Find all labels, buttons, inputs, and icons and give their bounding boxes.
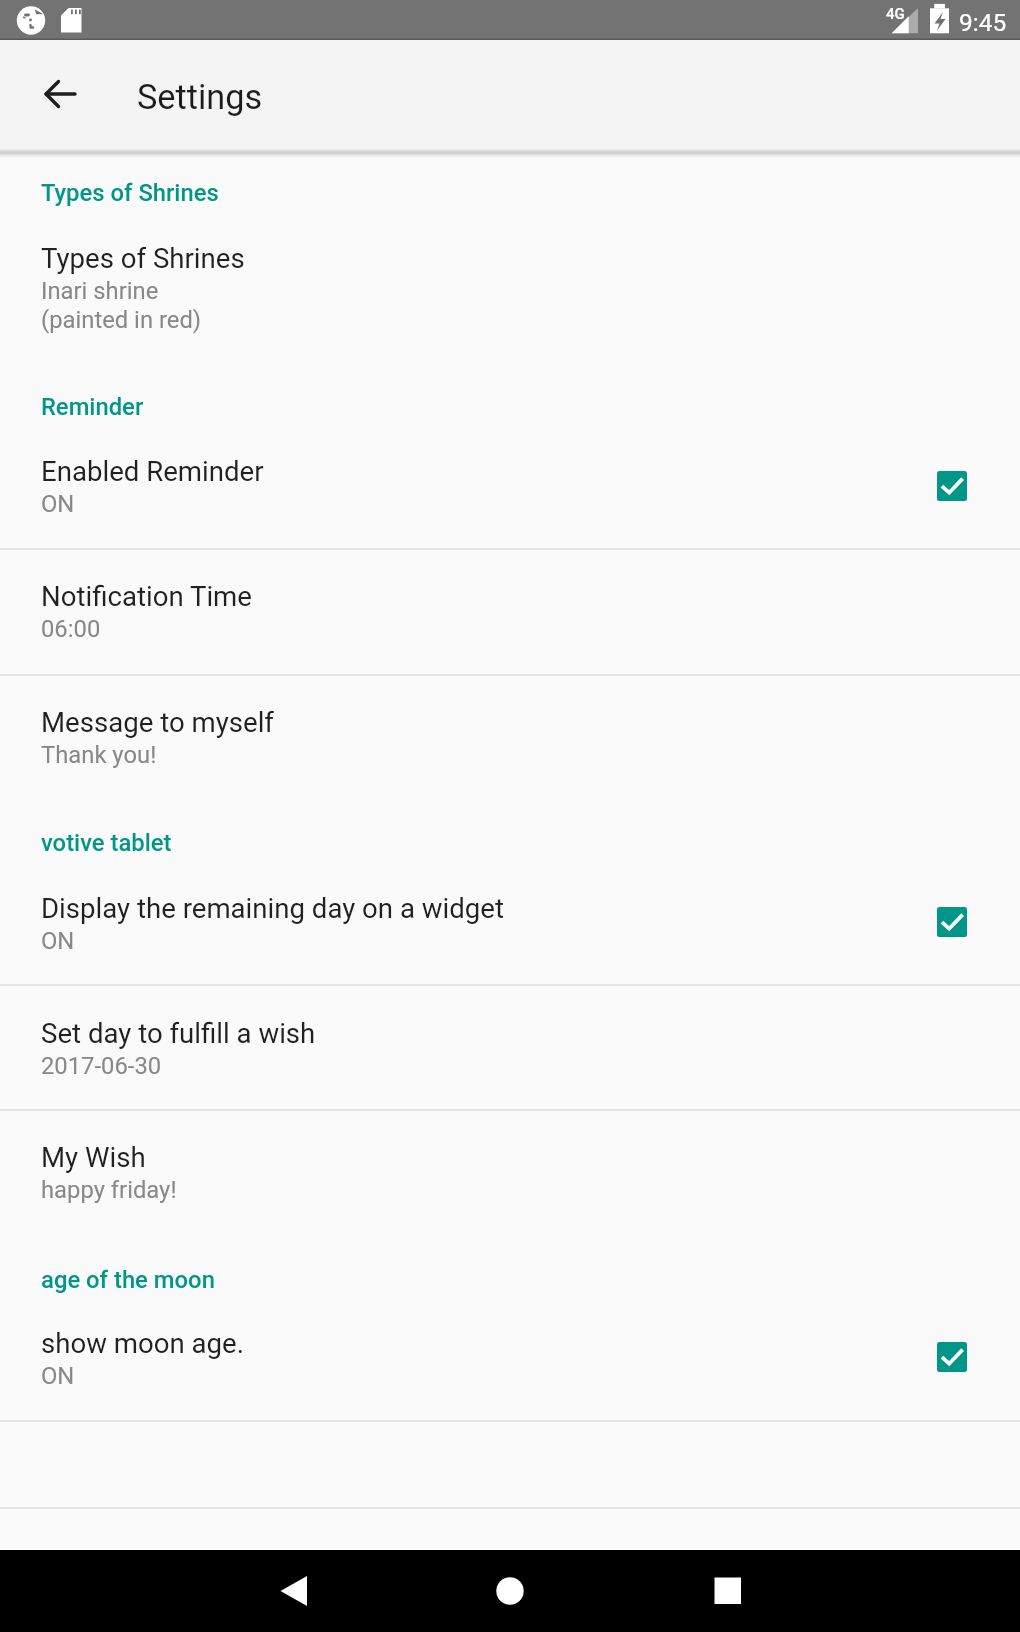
button[interactable]: Recent apps	[688, 1551, 768, 1631]
button[interactable]: My Wish	[0, 1108, 1020, 1232]
staticText: show moon age.	[41, 1327, 244, 1359]
staticText: Set day to fulfill a wish	[41, 1017, 316, 1049]
button[interactable]: Set day to fulfill a wish	[0, 983, 1020, 1108]
staticText: 4G	[886, 5, 905, 23]
staticText: Reminder	[41, 393, 144, 421]
staticText: Types of Shrines	[41, 179, 219, 207]
staticText: 06:00	[41, 615, 101, 643]
staticText: 2017-06-30	[41, 1052, 162, 1080]
staticText: Enabled Reminder	[41, 455, 264, 487]
button[interactable]: Navigate up	[12, 46, 108, 142]
staticText: My Wish	[41, 1141, 146, 1173]
button[interactable]: Notification Time	[0, 549, 1020, 673]
staticText: (painted in red)	[41, 306, 202, 334]
staticText: Types of Shrines	[41, 242, 245, 274]
staticText: ON	[41, 927, 75, 955]
button[interactable]: Types of Shrines	[0, 222, 1020, 360]
staticText: happy friday!	[41, 1176, 177, 1204]
staticText: 9:45	[959, 8, 1007, 37]
staticText: ON	[41, 1362, 75, 1390]
button[interactable]: Back	[254, 1551, 334, 1631]
staticText: Inari shrine	[41, 277, 159, 305]
other: Enabled Reminder enabled	[937, 471, 967, 501]
other: show moon age. enabled	[937, 1342, 967, 1372]
staticText: ON	[41, 490, 75, 518]
button[interactable]: Display the remaining day on a widget	[0, 871, 1020, 983]
button[interactable]: Enabled Reminder	[0, 435, 1020, 549]
staticText: votive tablet	[41, 829, 172, 857]
staticText: Display the remaining day on a widget	[41, 892, 504, 924]
button[interactable]: show moon age.	[0, 1308, 1020, 1419]
button[interactable]: Message to myself	[0, 673, 1020, 797]
staticText: age of the moon	[41, 1266, 215, 1294]
staticText: Settings	[137, 77, 263, 117]
staticText: Message to myself	[41, 706, 274, 738]
staticText: Thank you!	[41, 741, 157, 769]
button[interactable]: Home	[470, 1551, 550, 1631]
staticText: Notification Time	[41, 580, 252, 612]
other: Display the remaining day on a widget en…	[937, 907, 967, 937]
